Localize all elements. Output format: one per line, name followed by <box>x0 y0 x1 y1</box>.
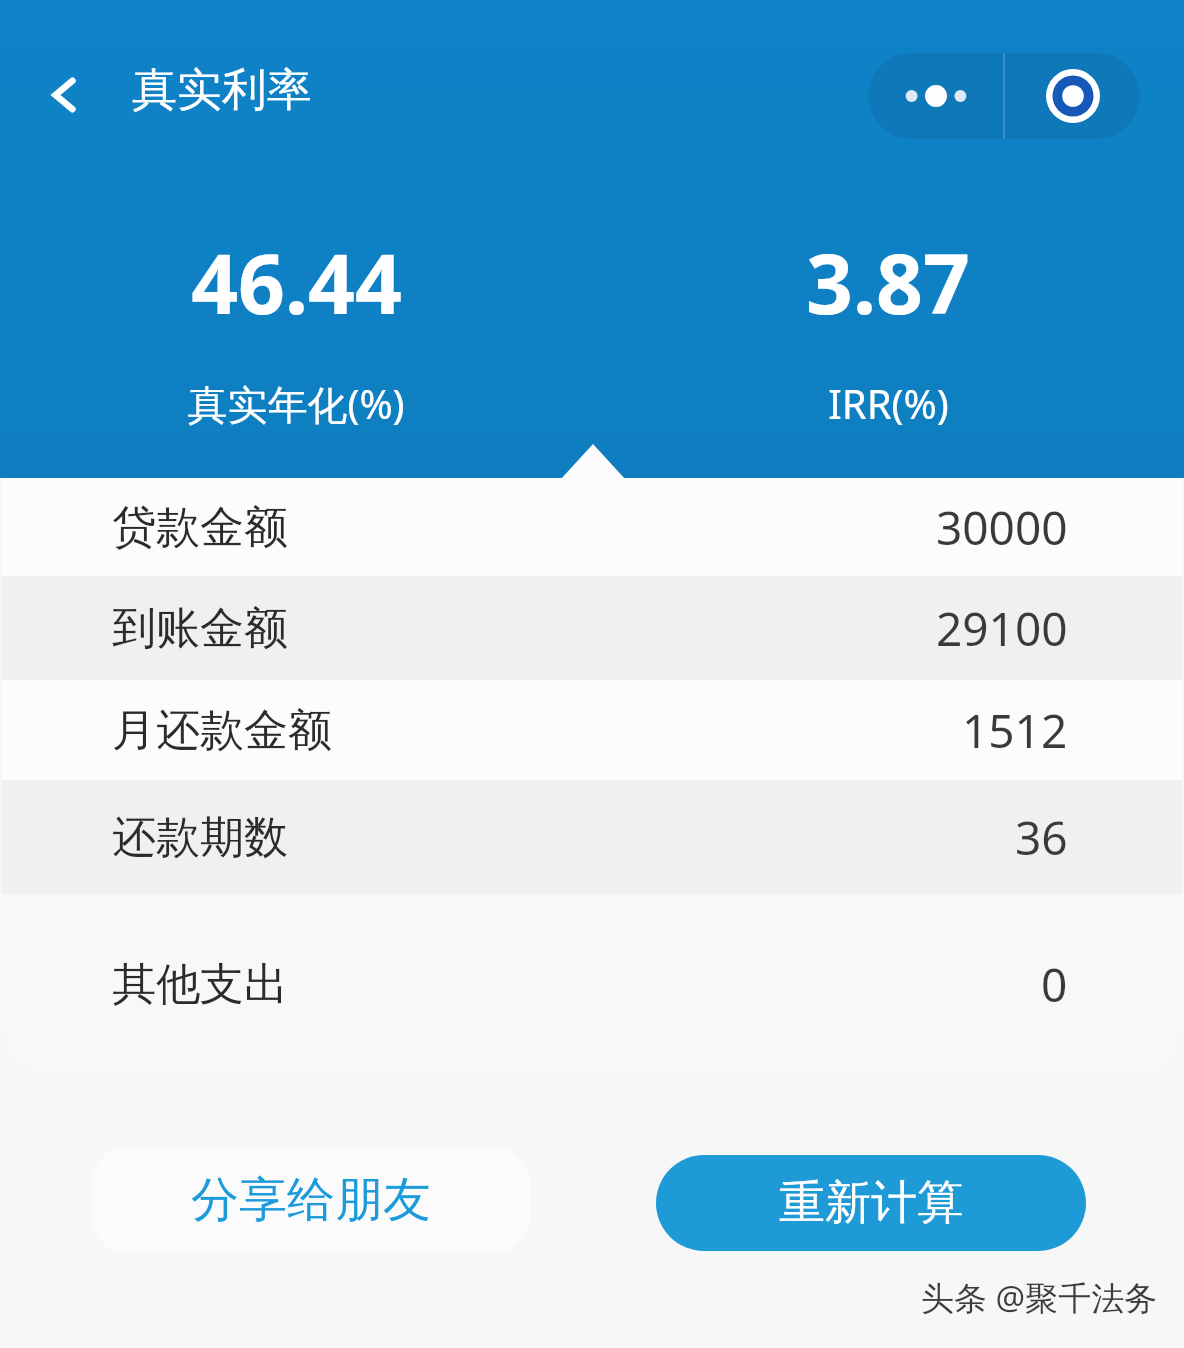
staticText: 30000 <box>936 496 1068 559</box>
staticText: 月还款金额 <box>112 703 332 758</box>
button[interactable]: Close <box>1005 53 1140 139</box>
staticText: 29100 <box>936 597 1068 660</box>
button[interactable]: 其他支出 <box>2 894 1182 1075</box>
staticText: 0 <box>1041 953 1068 1016</box>
staticText: 1512 <box>962 699 1068 762</box>
button[interactable]: 到账金额 <box>2 576 1182 680</box>
staticText: 重新计算 <box>779 1174 963 1232</box>
staticText: 还款期数 <box>112 810 288 865</box>
staticText: 头条 @聚千法务 <box>921 1275 1158 1320</box>
button[interactable]: 月还款金额 <box>2 680 1182 780</box>
button[interactable]: 贷款金额 <box>2 478 1182 576</box>
staticText: 真实利率 <box>132 62 312 119</box>
staticText: 36 <box>1015 806 1068 869</box>
staticText: 贷款金额 <box>112 500 288 555</box>
button[interactable]: Back <box>26 56 104 134</box>
button[interactable]: More <box>868 53 1003 139</box>
staticText: 到账金额 <box>112 601 288 656</box>
staticText: 46.44 <box>191 226 402 338</box>
staticText: 其他支出 <box>112 957 288 1012</box>
button[interactable]: 还款期数 <box>2 780 1182 894</box>
button[interactable]: 重新计算 <box>656 1155 1086 1251</box>
staticText: 3.87 <box>806 226 970 338</box>
staticText: 分享给朋友 <box>191 1170 431 1230</box>
button[interactable]: 分享给朋友 <box>92 1148 530 1252</box>
staticText: 真实年化(%) <box>187 376 405 431</box>
staticText: IRR(%) <box>828 376 949 430</box>
